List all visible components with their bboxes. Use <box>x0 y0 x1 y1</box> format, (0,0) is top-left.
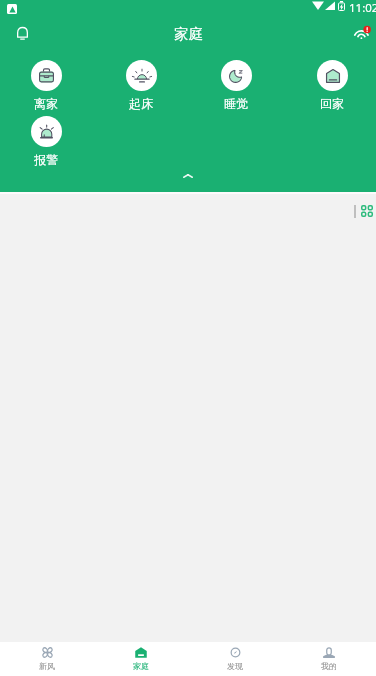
staticText: 家庭 <box>133 661 149 671</box>
staticText: 报警 <box>34 152 58 167</box>
button[interactable]: 家庭 <box>94 642 188 676</box>
staticText: 起床 <box>129 96 153 111</box>
button[interactable]: 起床 <box>101 60 181 111</box>
button[interactable]: 我的 <box>282 642 376 676</box>
button[interactable]: Collapse <box>0 174 376 188</box>
staticText: 睡觉 <box>224 96 248 111</box>
staticText: 离家 <box>34 96 58 111</box>
button[interactable]: 新风 <box>0 642 94 676</box>
button[interactable]: 发现 <box>188 642 282 676</box>
staticText: 新风 <box>39 661 55 671</box>
staticText: 回家 <box>320 96 344 111</box>
staticText: 家庭 <box>174 25 203 43</box>
button[interactable]: 报警 <box>6 116 86 167</box>
button[interactable]: Grid view <box>360 204 374 218</box>
button[interactable]: 睡觉 <box>196 60 276 111</box>
staticText: 发现 <box>227 661 243 671</box>
button[interactable]: Network status <box>350 21 376 47</box>
staticText: 11:02 <box>349 0 376 16</box>
staticText: 我的 <box>321 661 337 671</box>
button[interactable]: 回家 <box>292 60 372 111</box>
button[interactable]: 离家 <box>6 60 86 111</box>
button[interactable]: Notifications <box>7 18 37 48</box>
